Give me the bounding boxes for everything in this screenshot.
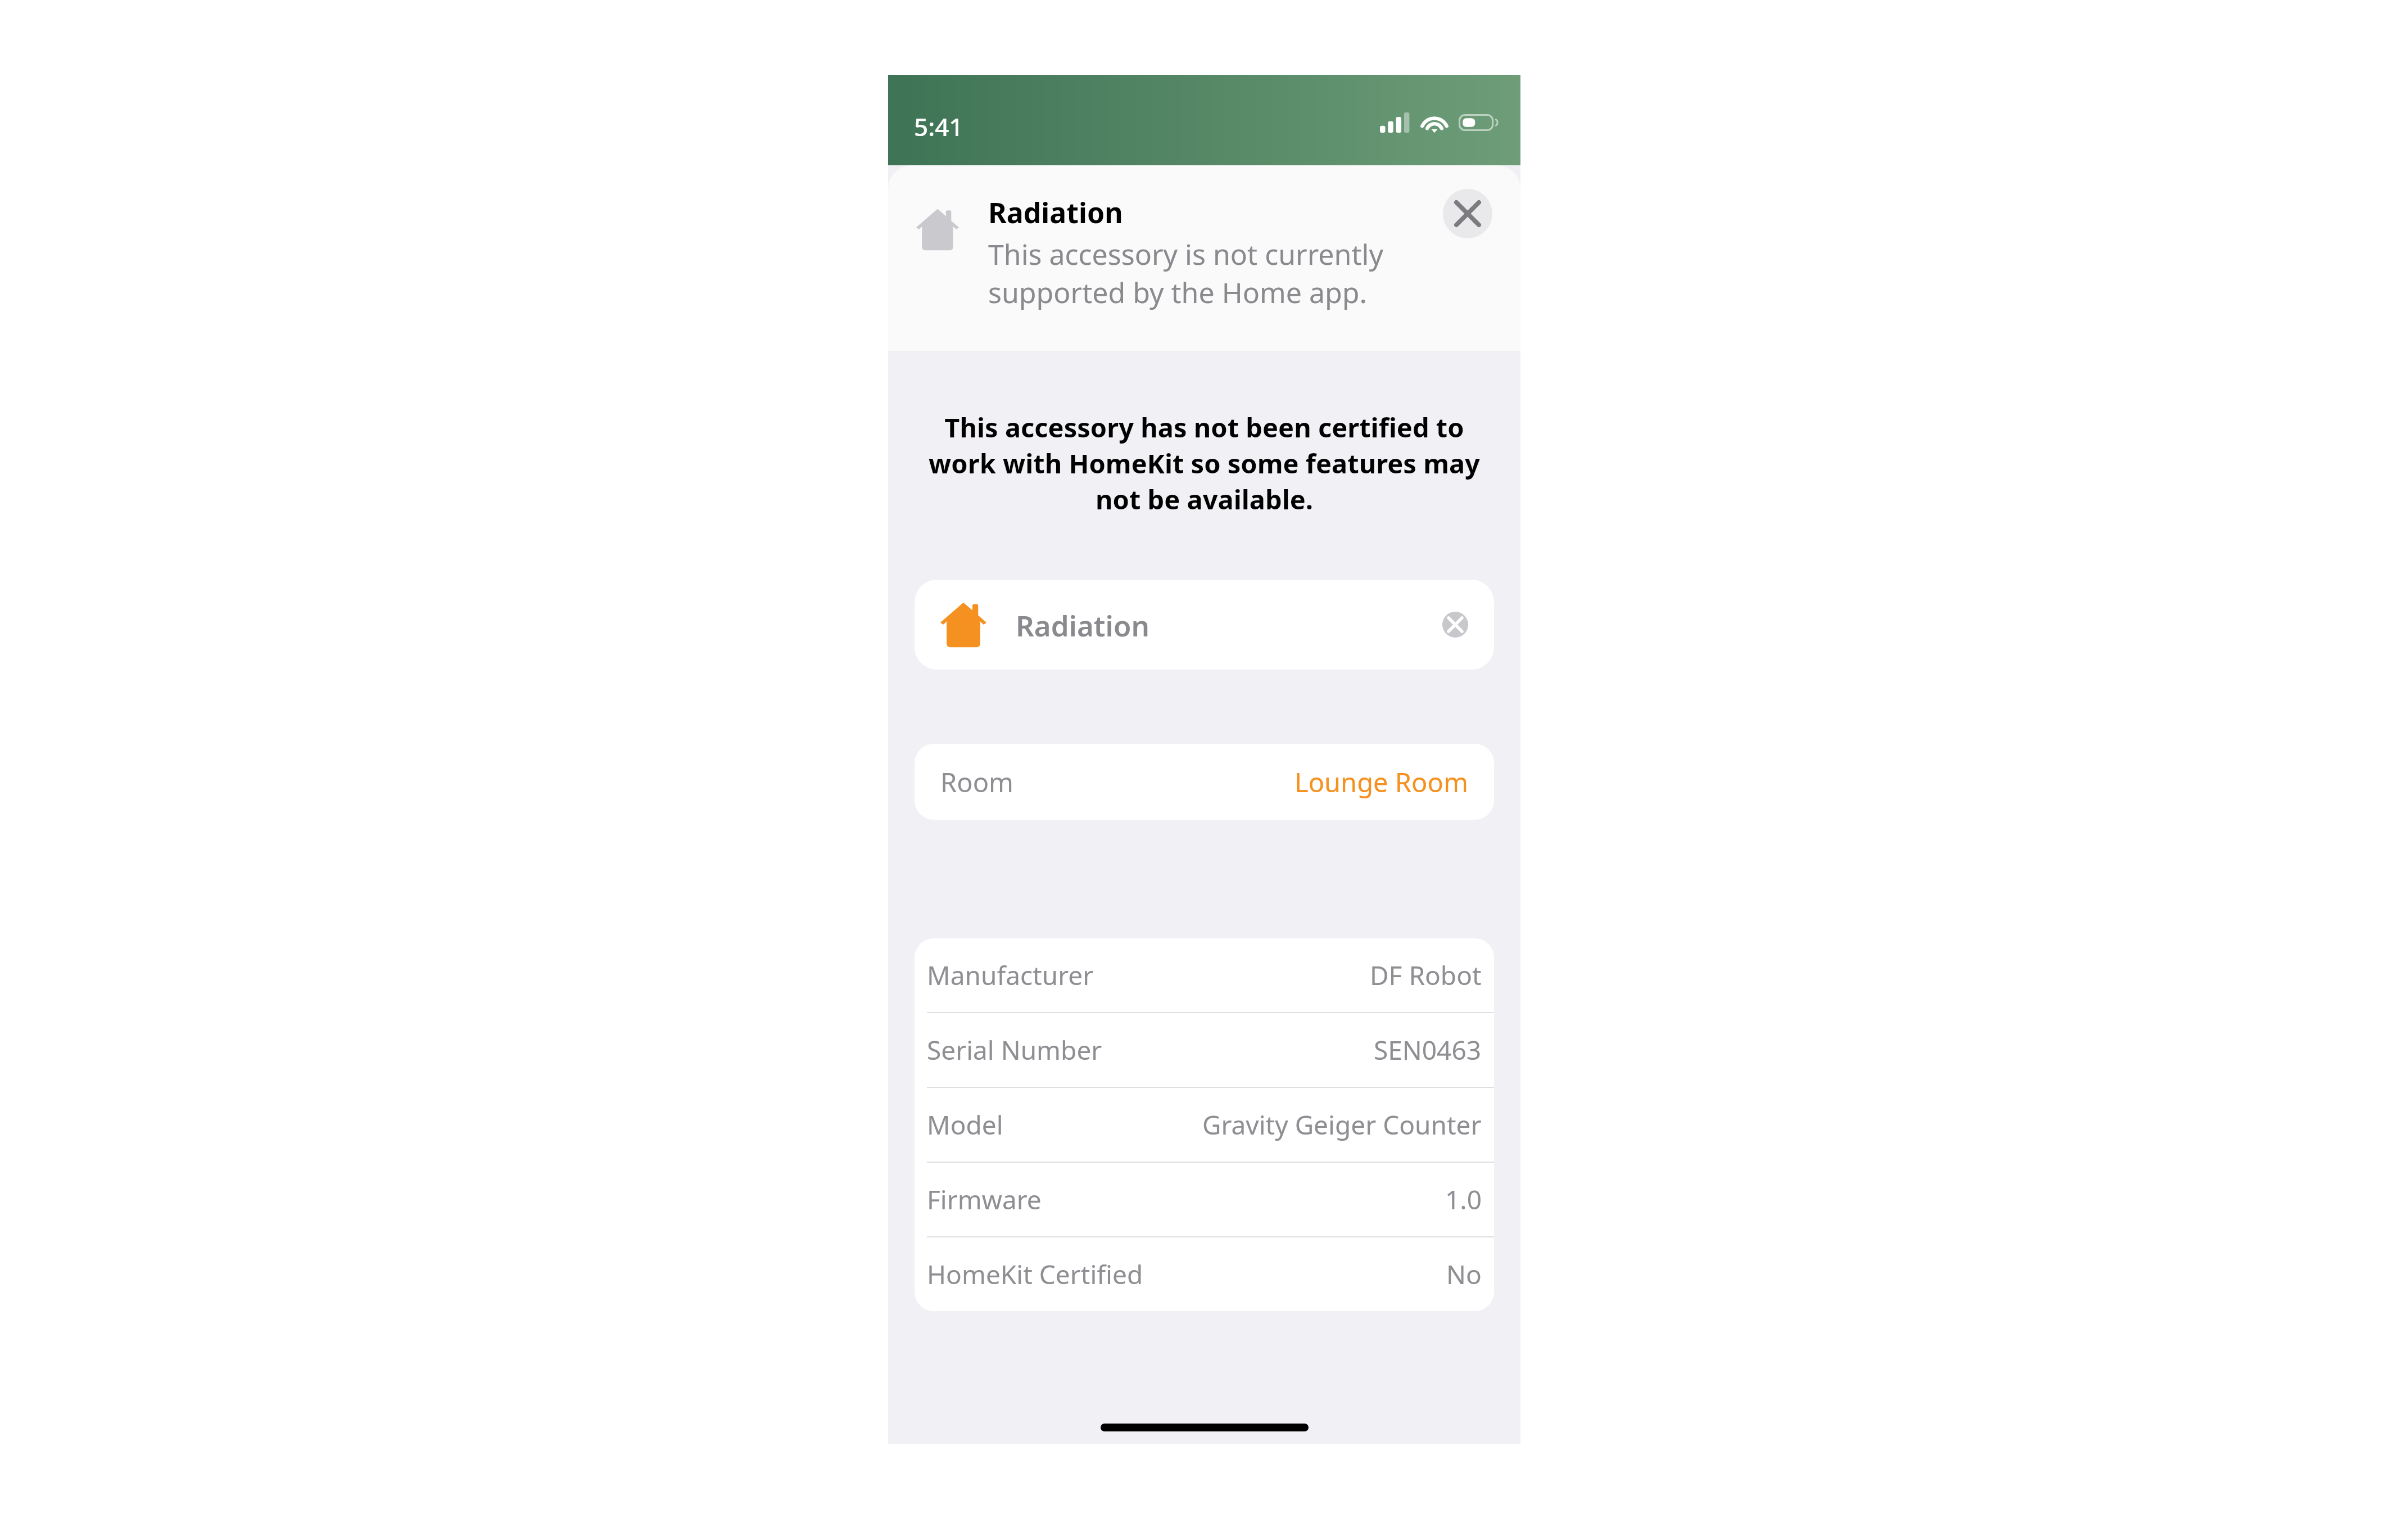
staticText: Serial Number xyxy=(927,1032,1102,1068)
staticText: 1.0 xyxy=(1445,1182,1482,1217)
staticText: Manufacturer xyxy=(927,957,1094,993)
button[interactable]: Close xyxy=(1443,189,1492,238)
button[interactable]: Firmware xyxy=(915,1162,1494,1236)
button[interactable]: Room xyxy=(915,744,1494,820)
button[interactable]: Serial Number xyxy=(915,1012,1494,1087)
staticText: Radiation xyxy=(1016,606,1149,644)
button[interactable]: Model xyxy=(915,1087,1494,1162)
staticText: 5:41 xyxy=(914,110,963,143)
button[interactable]: HomeKit Certified xyxy=(915,1236,1494,1311)
button[interactable]: Radiation xyxy=(915,580,1494,670)
staticText: This accessory has not been certified to… xyxy=(902,409,1507,517)
staticText: SEN0463 xyxy=(1374,1032,1482,1068)
staticText: Lounge Room xyxy=(1294,764,1468,800)
staticText: Radiation xyxy=(988,193,1123,232)
staticText: Model xyxy=(927,1107,1003,1142)
staticText: This accessory is not currently supporte… xyxy=(988,235,1383,311)
staticText: DF Robot xyxy=(1370,957,1482,993)
staticText: HomeKit Certified xyxy=(927,1257,1143,1292)
staticText: Firmware xyxy=(927,1182,1042,1217)
staticText: Room xyxy=(940,764,1014,800)
staticText: No xyxy=(1446,1257,1482,1292)
staticText: Gravity Geiger Counter xyxy=(1202,1107,1482,1142)
button[interactable]: Manufacturer xyxy=(915,938,1494,1012)
